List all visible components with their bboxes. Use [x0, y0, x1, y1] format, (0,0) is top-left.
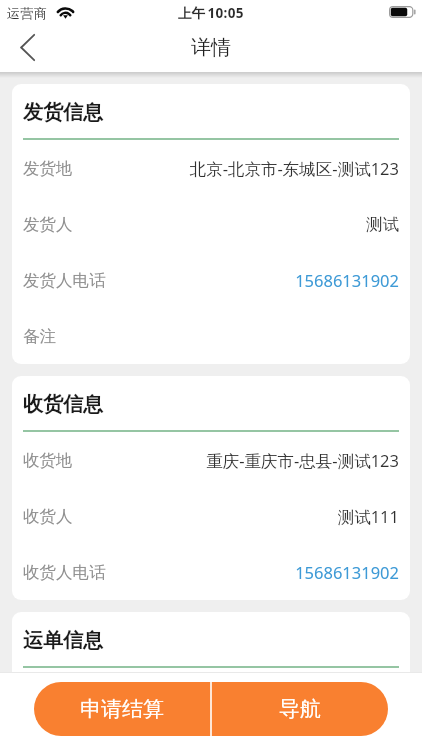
button[interactable]: 发货地	[23, 140, 399, 196]
button[interactable]: 发货人电话	[23, 252, 399, 308]
staticText: 发货信息	[23, 100, 103, 125]
button[interactable]: 发货人	[23, 196, 399, 252]
staticText: 发货人电话	[23, 270, 106, 291]
staticText: 北京-北京市-东城区-测试123	[81, 157, 399, 180]
button[interactable]: 收货人电话	[23, 544, 399, 600]
staticText: 运营商	[7, 5, 48, 21]
staticText: 15686131902	[114, 561, 399, 583]
staticText: 测试111	[81, 505, 399, 528]
staticText: 重庆-重庆市-忠县-测试123	[81, 449, 399, 472]
staticText: 导航	[279, 696, 321, 722]
staticText: 收货人	[23, 506, 73, 527]
staticText: 详情	[191, 35, 231, 60]
button[interactable]: 收货人	[23, 488, 399, 544]
staticText: 测试	[81, 214, 399, 235]
staticText: 收货人电话	[23, 562, 106, 583]
staticText: 收货地	[23, 450, 73, 471]
staticText: 运单信息	[23, 628, 103, 653]
staticText: 收货信息	[23, 392, 103, 417]
staticText: 上午 10:05	[178, 4, 244, 22]
staticText: 申请结算	[80, 696, 164, 722]
button[interactable]: 收货地	[23, 432, 399, 488]
button[interactable]: 备注	[23, 308, 399, 364]
staticText: 备注	[23, 326, 56, 347]
staticText: 发货人	[23, 214, 73, 235]
staticText: 15686131902	[114, 269, 399, 291]
button[interactable]: 导航	[212, 682, 388, 736]
button[interactable]: 申请结算	[34, 682, 210, 736]
button[interactable]: Back	[0, 25, 55, 72]
staticText: 发货地	[23, 158, 73, 179]
